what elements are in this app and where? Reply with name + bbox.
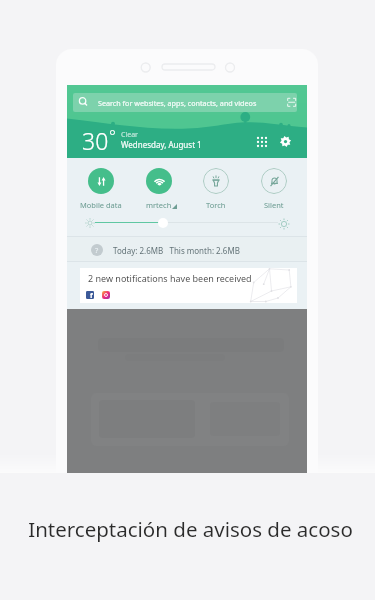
button[interactable]: ? bbox=[67, 236, 307, 262]
staticText: Interceptación de avisos de acoso bbox=[3, 515, 375, 543]
staticText: Clear bbox=[121, 130, 138, 140]
button[interactable]: Search for websites, apps, contacts, and… bbox=[73, 93, 297, 112]
staticText: Silent bbox=[264, 200, 284, 210]
staticText: ? bbox=[95, 245, 99, 255]
button[interactable]: Settings bbox=[279, 135, 292, 148]
staticText: 30 bbox=[82, 125, 109, 156]
button[interactable]: Silent bbox=[244, 168, 304, 211]
staticText: Mobile data bbox=[80, 200, 122, 210]
staticText: mrtech bbox=[146, 200, 172, 210]
staticText: Search for websites, apps, contacts, and… bbox=[98, 98, 257, 108]
button[interactable]: Torch bbox=[186, 168, 246, 211]
staticText: f bbox=[90, 291, 93, 299]
staticText: Wednesday, August 1 bbox=[121, 139, 202, 150]
staticText: Today: 2.6MB This month: 2.6MB bbox=[113, 245, 240, 256]
staticText: 2 new notifications have been received bbox=[88, 272, 252, 284]
button[interactable]: mrtech bbox=[129, 168, 189, 211]
button[interactable]: All apps bbox=[257, 137, 267, 147]
button[interactable]: Mobile data bbox=[71, 168, 131, 211]
staticText: Torch bbox=[206, 200, 226, 210]
staticText: ° bbox=[109, 125, 116, 147]
button[interactable]: 2 new notifications have been received bbox=[80, 268, 297, 303]
